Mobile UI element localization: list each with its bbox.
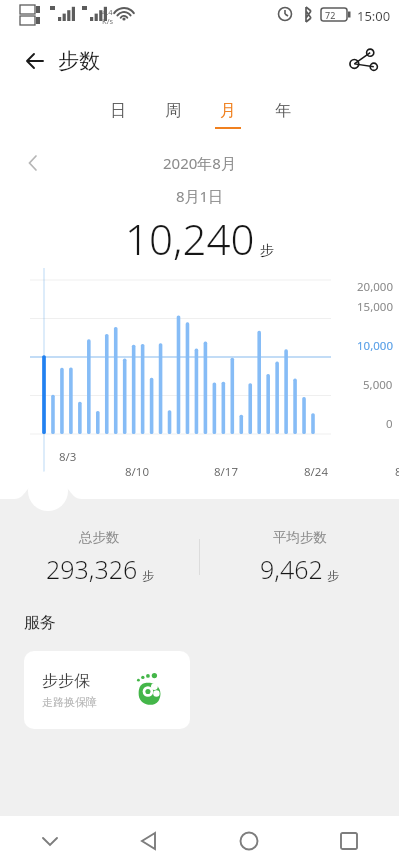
- staticText: 步步保: [42, 671, 90, 691]
- staticText: 步: [142, 568, 154, 583]
- staticText: 日: [110, 101, 126, 121]
- staticText: 10,000: [357, 338, 393, 354]
- button[interactable]: 周: [145, 90, 200, 140]
- button[interactable]: 平均步数: [200, 529, 399, 586]
- staticText: 总步数: [79, 529, 120, 546]
- staticText: 平均步数: [273, 529, 327, 546]
- staticText: 走路换保障: [42, 695, 97, 709]
- staticText: 15:00: [357, 7, 391, 25]
- staticText: 8月1日: [176, 186, 224, 206]
- button[interactable]: 总步数: [0, 529, 199, 586]
- button[interactable]: Home: [199, 816, 299, 866]
- staticText: 9,462: [260, 552, 323, 586]
- staticText: 5,000: [363, 377, 393, 393]
- staticText: 月: [220, 101, 236, 121]
- staticText: 293,326: [46, 552, 138, 586]
- staticText: 步数: [58, 48, 100, 74]
- button[interactable]: Back: [18, 44, 52, 78]
- staticText: 服务: [24, 613, 56, 633]
- staticText: 2020年8月: [163, 153, 236, 173]
- staticText: 步: [327, 568, 339, 583]
- button[interactable]: 日: [90, 90, 145, 140]
- staticText: 步: [260, 242, 274, 260]
- button[interactable]: Hide keyboard: [0, 816, 99, 866]
- staticText: 8/31: [395, 464, 399, 480]
- staticText: 8/17: [214, 464, 239, 480]
- button[interactable]: Recents: [299, 816, 399, 866]
- button[interactable]: 步步保: [24, 651, 190, 729]
- button[interactable]: 年: [255, 90, 310, 140]
- staticText: 周: [165, 101, 181, 121]
- staticText: 20,000: [357, 279, 393, 295]
- staticText: 8/24: [304, 464, 329, 480]
- button[interactable]: 月: [200, 90, 255, 140]
- staticText: 0: [386, 416, 393, 432]
- button[interactable]: Back: [99, 816, 199, 866]
- staticText: 8/3: [59, 449, 77, 465]
- button[interactable]: Share: [345, 43, 381, 79]
- staticText: 年: [275, 101, 291, 121]
- staticText: 4.4 K/s: [102, 7, 114, 26]
- staticText: 15,000: [357, 299, 393, 315]
- staticText: 8/10: [125, 464, 150, 480]
- staticText: 72: [325, 9, 336, 21]
- button[interactable]: Previous month: [18, 148, 48, 178]
- staticText: 10,240: [125, 210, 255, 267]
